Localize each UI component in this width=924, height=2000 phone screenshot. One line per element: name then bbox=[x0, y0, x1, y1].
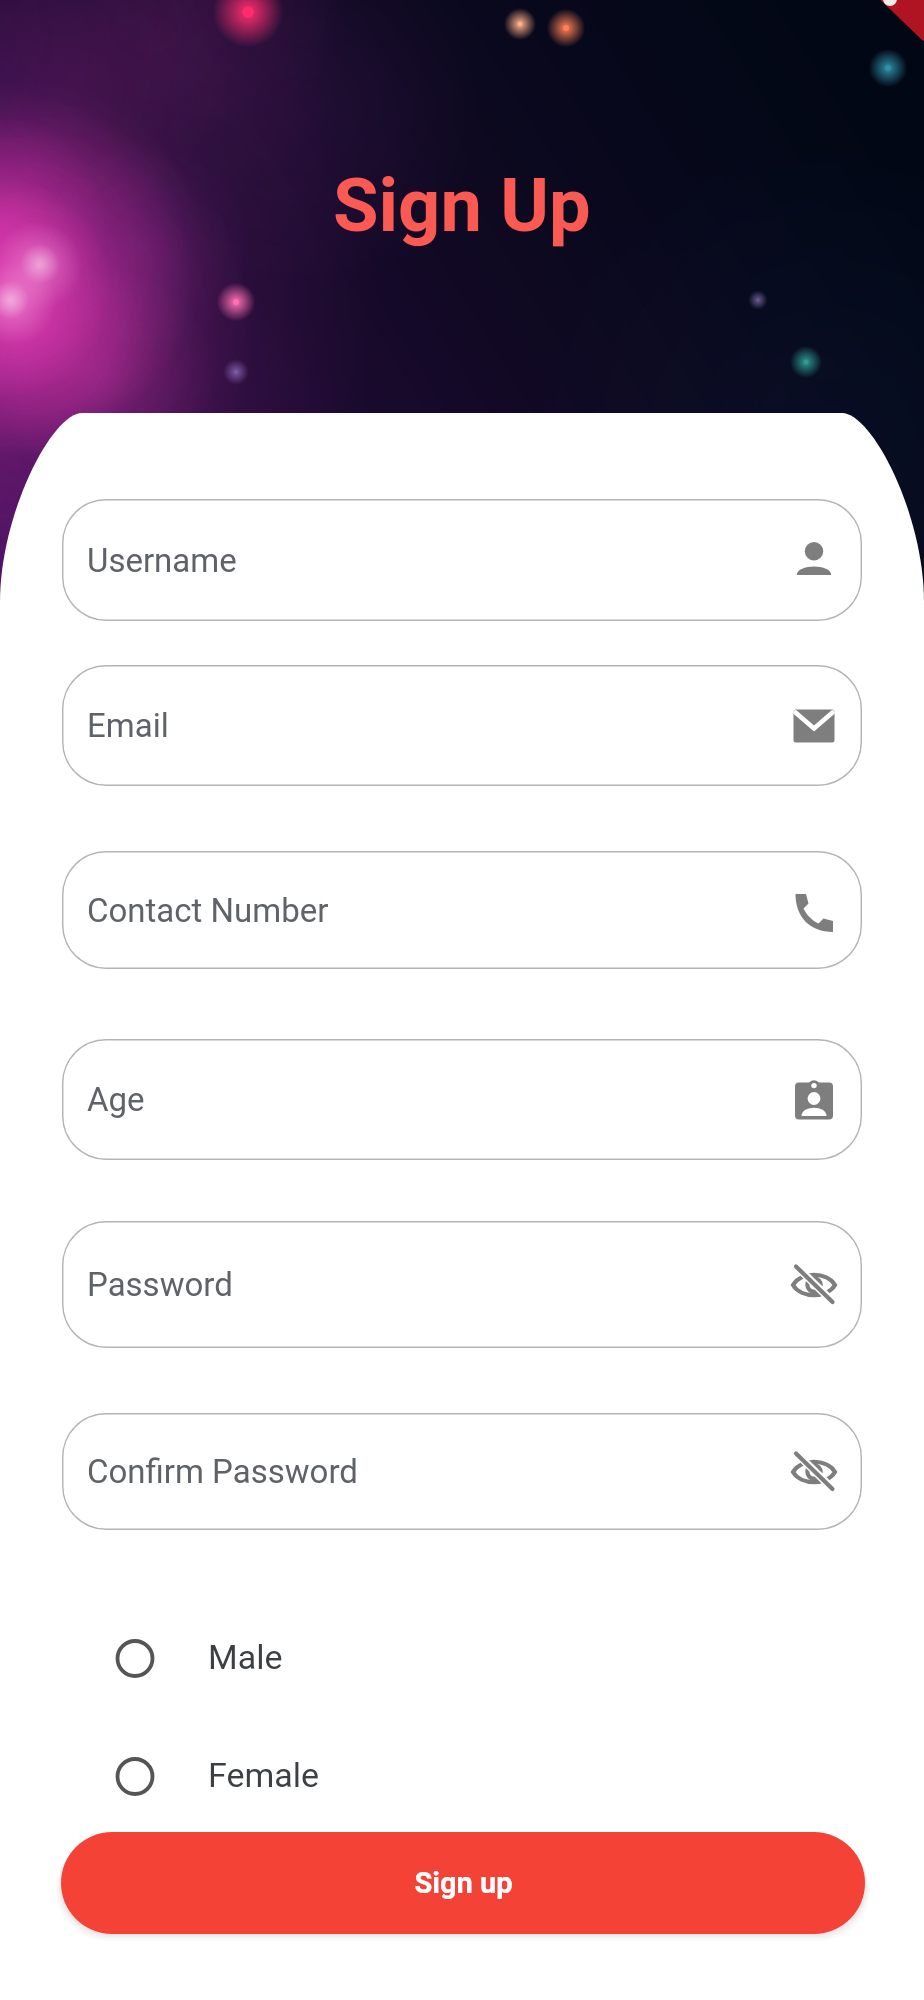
staticText: Username bbox=[87, 541, 237, 580]
button[interactable]: Age bbox=[62, 1039, 862, 1160]
staticText: Password bbox=[87, 1265, 233, 1304]
button[interactable]: Male bbox=[112, 1615, 432, 1699]
button[interactable]: Email bbox=[790, 702, 838, 750]
staticText: Male bbox=[208, 1637, 283, 1677]
button[interactable]: Contact number bbox=[790, 886, 838, 934]
button[interactable]: Contact Number bbox=[62, 851, 862, 969]
staticText: Female bbox=[208, 1755, 320, 1795]
staticText: Email bbox=[87, 706, 169, 745]
button[interactable]: Show password bbox=[790, 1261, 838, 1309]
staticText: Age bbox=[87, 1080, 145, 1119]
staticText: Contact Number bbox=[87, 891, 329, 930]
button[interactable]: Confirm Password bbox=[62, 1413, 862, 1530]
button[interactable]: Sign up bbox=[61, 1832, 865, 1934]
staticText: Sign Up bbox=[333, 162, 591, 249]
button[interactable]: Female bbox=[112, 1733, 432, 1817]
staticText: Confirm Password bbox=[87, 1452, 358, 1491]
button[interactable]: Username bbox=[790, 536, 838, 584]
staticText: Sign up bbox=[414, 1866, 513, 1900]
button[interactable]: Password bbox=[62, 1221, 862, 1348]
button[interactable]: Age bbox=[790, 1076, 838, 1124]
button[interactable]: Email bbox=[62, 665, 862, 786]
button[interactable]: Show confirm password bbox=[790, 1448, 838, 1496]
button[interactable]: Username bbox=[62, 499, 862, 621]
